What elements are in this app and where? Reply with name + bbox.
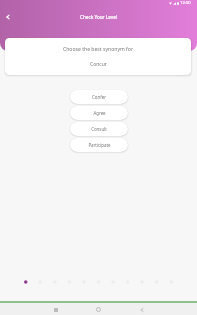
button[interactable]: Participate	[70, 138, 128, 152]
button[interactable]: Back	[136, 304, 147, 315]
button[interactable]: Consult	[70, 122, 128, 136]
button[interactable]: Agree	[70, 106, 128, 120]
staticText: Check Your Level	[80, 14, 118, 20]
staticText: Confer	[92, 94, 106, 100]
staticText: Participate	[88, 142, 111, 148]
staticText: Consult	[91, 126, 107, 132]
button[interactable]: Recent apps	[50, 304, 61, 315]
staticText: Choose the best synonym for	[63, 46, 133, 53]
staticText: Concur	[90, 61, 107, 68]
button[interactable]: Back	[1, 10, 15, 24]
staticText: Agree	[93, 110, 106, 116]
button[interactable]: Home	[93, 304, 104, 315]
staticText: 12:00	[180, 0, 191, 6]
button[interactable]: Confer	[70, 90, 128, 104]
